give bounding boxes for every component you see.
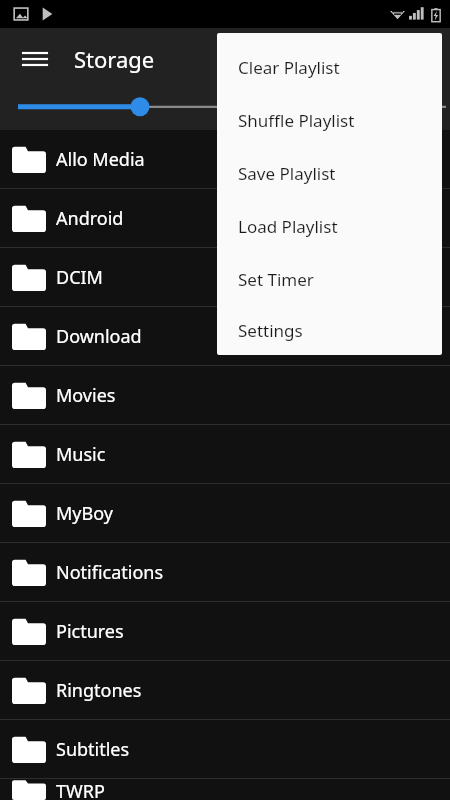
staticText: Settings [238,319,303,342]
button[interactable]: Subtitles [0,720,450,778]
button[interactable]: Shuffle Playlist [217,94,442,147]
staticText: Subtitles [56,737,130,762]
button[interactable]: Save Playlist [217,147,442,200]
staticText: Storage [74,44,155,74]
staticText: Movies [56,383,116,408]
staticText: Music [56,442,106,467]
button[interactable]: Load Playlist [217,200,442,253]
button[interactable]: Movies [0,366,450,424]
staticText: Clear Playlist [238,56,340,79]
button[interactable]: MyBoy [0,484,450,542]
button[interactable]: Settings [217,306,442,355]
staticText: Shuffle Playlist [238,109,355,132]
staticText: Load Playlist [238,215,338,238]
button[interactable]: TWRP [0,779,450,800]
staticText: DCIM [56,265,103,290]
button[interactable]: Clear Playlist [217,41,442,94]
button[interactable]: Android [0,189,450,247]
staticText: Set Timer [238,268,314,291]
staticText: Pictures [56,619,124,644]
staticText: MyBoy [56,501,113,526]
button[interactable]: DCIM [0,248,450,306]
button[interactable]: Download [0,307,450,365]
staticText: Allo Media [56,147,145,172]
staticText: Android [56,206,124,231]
staticText: TWRP [56,779,105,800]
button[interactable]: Set Timer [217,253,442,306]
button[interactable]: Open navigation drawer [14,38,56,80]
staticText: Save Playlist [238,162,336,185]
button[interactable]: Playback position [0,90,450,130]
staticText: Ringtones [56,678,142,703]
button[interactable]: Allo Media [0,130,450,188]
button[interactable]: Ringtones [0,661,450,719]
button[interactable]: Music [0,425,450,483]
staticText: Download [56,324,142,349]
button[interactable]: Notifications [0,543,450,601]
button[interactable]: Pictures [0,602,450,660]
staticText: Notifications [56,560,164,585]
